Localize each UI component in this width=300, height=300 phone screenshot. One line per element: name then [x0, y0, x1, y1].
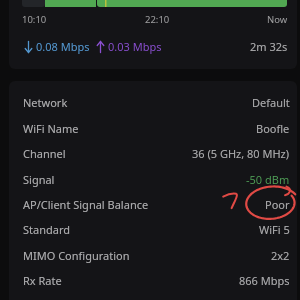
button[interactable]: MIMO Configuration — [9, 243, 297, 268]
staticText: 866 Mbps — [239, 273, 290, 288]
staticText: 36 (5 GHz, 80 MHz) — [192, 146, 290, 161]
staticText: Signal — [23, 172, 55, 187]
staticText: Rx Rate — [23, 273, 62, 288]
staticText: Channel — [23, 146, 66, 161]
staticText: WiFi Name — [23, 121, 79, 136]
staticText: 2x2 — [271, 248, 290, 263]
staticText: 0.03 Mbps — [108, 39, 162, 54]
button[interactable]: Standard — [9, 217, 297, 242]
staticText: Network — [23, 95, 68, 110]
staticText: Poor — [265, 197, 290, 212]
staticText: Boofle — [256, 121, 290, 136]
staticText: 22:10 — [145, 13, 170, 26]
staticText: -50 dBm — [246, 172, 290, 187]
staticText: 10:10 — [22, 13, 47, 26]
staticText: MIMO Configuration — [23, 248, 130, 263]
button[interactable]: Network — [9, 90, 297, 115]
other: Download speed — [25, 41, 32, 53]
staticText: 2m 32s — [250, 39, 288, 54]
staticText: Standard — [23, 222, 71, 237]
button[interactable]: Rx Rate — [9, 268, 297, 293]
staticText: Default — [252, 95, 290, 110]
staticText: Now — [267, 13, 288, 26]
other: Upload speed — [97, 41, 104, 53]
button[interactable]: Signal — [9, 167, 297, 192]
staticText: AP/Client Signal Balance — [23, 197, 149, 212]
staticText: WiFi 5 — [259, 222, 290, 237]
staticText: 0.08 Mbps — [36, 39, 90, 54]
button[interactable]: Channel — [9, 141, 297, 166]
button[interactable]: AP/Client Signal Balance — [9, 192, 297, 217]
button[interactable]: WiFi Name — [9, 116, 297, 141]
